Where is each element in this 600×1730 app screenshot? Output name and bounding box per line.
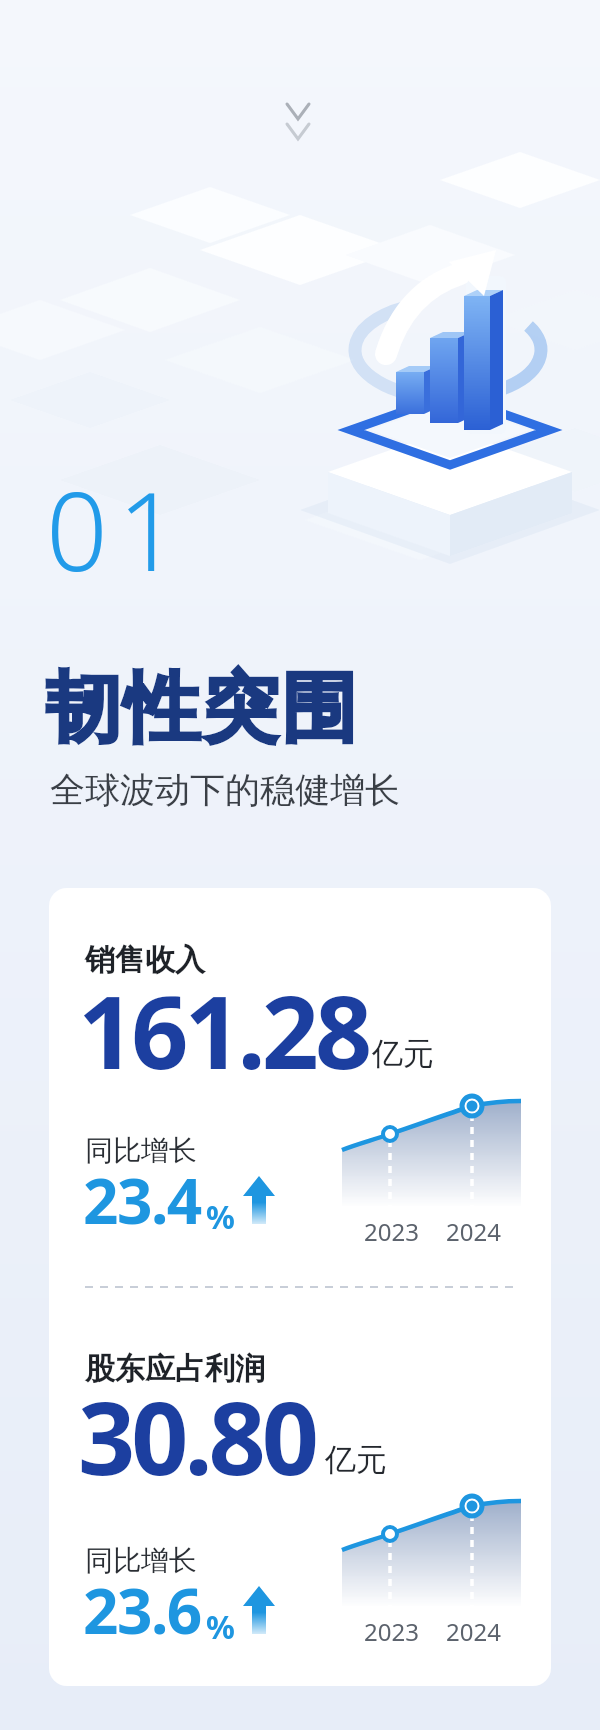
staticText: 23.6: [83, 1568, 201, 1652]
staticText: %: [206, 1195, 235, 1239]
staticText: 股东应占利润: [85, 1350, 265, 1388]
staticText: 2023: [364, 1215, 419, 1248]
staticText: 亿元: [325, 1440, 387, 1479]
staticText: 2023: [364, 1615, 419, 1648]
staticText: 全球波动下的稳健增长: [50, 768, 400, 812]
staticText: 2024: [446, 1615, 501, 1648]
button[interactable]: [283, 100, 317, 146]
staticText: 亿元: [372, 1034, 434, 1073]
staticText: 韧性突围: [44, 661, 358, 757]
button[interactable]: [49, 888, 551, 1686]
staticText: 161.28: [78, 962, 369, 1098]
staticText: 销售收入: [85, 941, 205, 979]
staticText: 01: [46, 456, 190, 603]
staticText: 23.4: [83, 1158, 201, 1242]
staticText: 同比增长: [85, 1133, 197, 1168]
staticText: 同比增长: [85, 1543, 197, 1578]
staticText: %: [206, 1605, 235, 1649]
staticText: 2024: [446, 1215, 501, 1248]
staticText: 30.80: [78, 1368, 315, 1504]
